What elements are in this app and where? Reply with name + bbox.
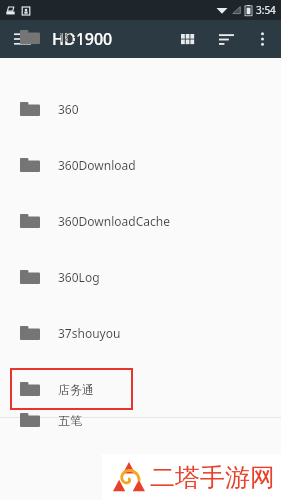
staticText: 五笔 [58,413,82,428]
staticText: 37shouyou [58,325,121,341]
staticText: HD1900 [52,28,113,50]
button[interactable]: 37shouyou [0,305,281,361]
button[interactable]: 店务通 [0,361,281,417]
staticText: 360 [58,101,79,117]
staticText: 360Download [58,157,136,173]
staticText: 360Log [58,269,100,285]
button[interactable]: 五笔 [0,417,281,447]
button[interactable]: Sort [207,20,245,58]
button[interactable]: Grid view [169,20,207,58]
button[interactable]: 360Log [0,249,281,305]
staticText: 店务通 [58,382,94,397]
staticText: 183 [58,29,79,45]
staticText: 360DownloadCache [58,213,170,229]
staticText: 二塔手游网 [150,462,275,493]
button[interactable]: 360DownloadCache [0,193,281,249]
button[interactable]: More options [245,22,279,56]
button[interactable]: Open navigation drawer [6,23,38,55]
button[interactable]: 360Download [0,137,281,193]
button[interactable]: 360 [0,81,281,137]
staticText: 3:54 [256,3,276,17]
